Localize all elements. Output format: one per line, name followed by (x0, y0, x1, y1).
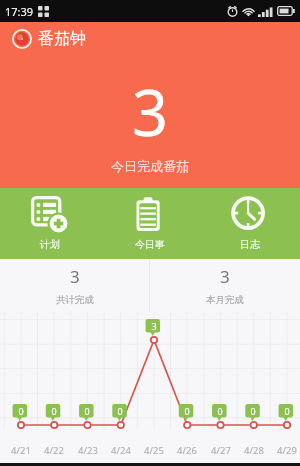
staticText: 17:39 (5, 4, 34, 19)
staticText: 4/27 (211, 444, 231, 457)
staticText: 0 (51, 405, 57, 417)
staticText: 3 (132, 69, 169, 155)
button[interactable]: 3 (0, 259, 149, 311)
staticText: 今日事 (135, 238, 165, 251)
staticText: 今日完成番茄 (111, 158, 189, 174)
staticText: 0 (217, 405, 223, 417)
staticText: 0 (250, 405, 256, 417)
staticText: 计划 (40, 238, 60, 251)
button[interactable]: 日志 (200, 188, 300, 259)
staticText: 4/22 (44, 444, 64, 457)
staticText: 4/28 (244, 444, 264, 457)
staticText: 番茄钟 (38, 29, 86, 49)
staticText: 3 (220, 265, 230, 288)
staticText: 4/26 (177, 444, 197, 457)
staticText: 3 (151, 320, 157, 332)
staticText: 0 (84, 405, 90, 417)
staticText: 4/23 (78, 444, 98, 457)
button[interactable]: 今日事 (100, 188, 200, 259)
staticText: 0 (18, 405, 24, 417)
staticText: 日志 (240, 238, 260, 251)
staticText: 4/21 (11, 444, 31, 457)
staticText: 4/29 (277, 444, 297, 457)
staticText: 0 (284, 405, 290, 417)
staticText: 4/24 (111, 444, 131, 457)
button[interactable]: 计划 (0, 188, 100, 259)
staticText: 0 (184, 405, 190, 417)
staticText: 本月完成 (206, 294, 244, 306)
staticText: 0 (117, 405, 123, 417)
staticText: 3 (70, 265, 80, 288)
button[interactable]: 3 (150, 259, 300, 311)
staticText: 共计完成 (56, 294, 94, 306)
staticText: 4/25 (144, 444, 164, 457)
